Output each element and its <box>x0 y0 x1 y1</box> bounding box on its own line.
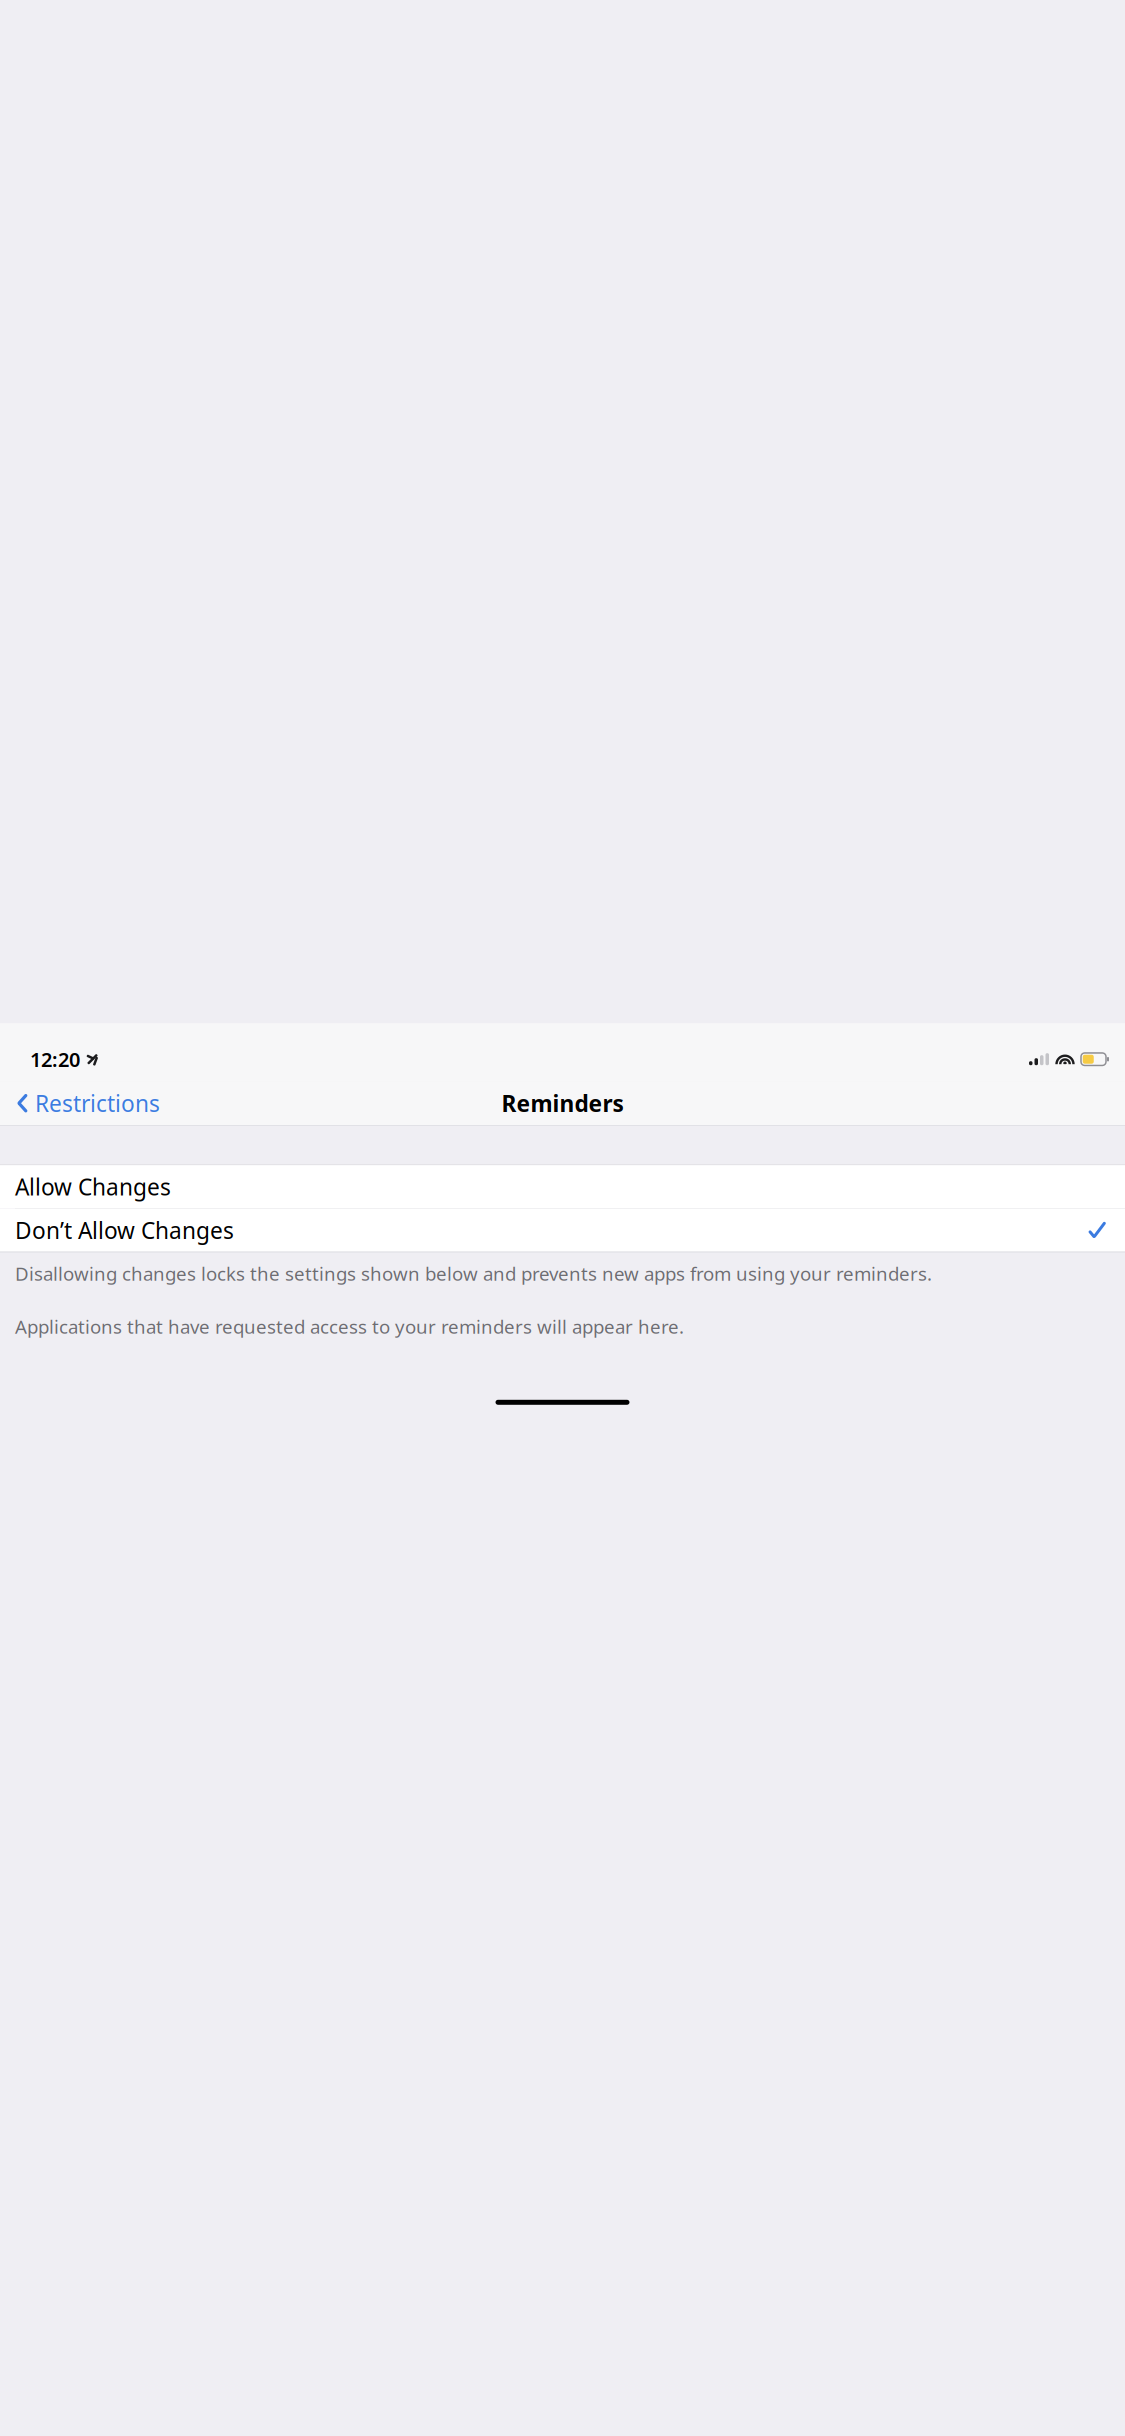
button[interactable]: Don’t Allow Changes <box>0 1209 1125 1252</box>
staticText: Reminders <box>501 1088 623 1118</box>
staticText: Applications that have requested access … <box>15 1314 684 1339</box>
staticText: Restrictions <box>35 1088 160 1118</box>
staticText: Allow Changes <box>15 1172 171 1202</box>
button[interactable]: Allow Changes <box>0 1165 1125 1208</box>
staticText: 12:20 <box>30 1046 80 1072</box>
staticText: Disallowing changes locks the settings s… <box>15 1261 932 1286</box>
staticText: Don’t Allow Changes <box>15 1215 234 1245</box>
button[interactable]: Restrictions <box>8 1082 160 1124</box>
